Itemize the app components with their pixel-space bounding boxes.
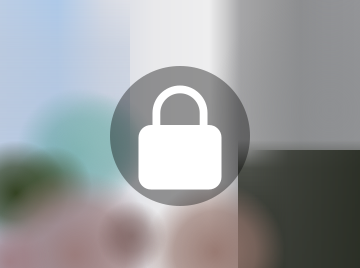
button[interactable]: Locked: [110, 66, 250, 206]
